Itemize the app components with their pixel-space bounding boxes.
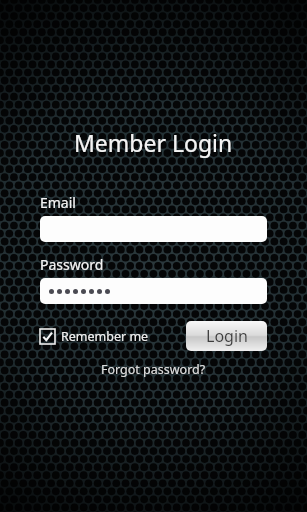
- staticText: Login: [206, 325, 248, 347]
- other: Remember me checkbox: [40, 329, 55, 344]
- button[interactable]: [40, 278, 267, 304]
- button[interactable]: Login: [186, 321, 267, 351]
- staticText: Password: [40, 255, 104, 274]
- button[interactable]: Remember me checkbox: [40, 328, 149, 345]
- staticText: Forgot password?: [101, 361, 206, 378]
- staticText: Member Login: [74, 127, 233, 158]
- button[interactable]: Forgot password?: [101, 361, 206, 378]
- staticText: Email: [40, 193, 76, 212]
- staticText: Remember me: [61, 328, 149, 345]
- button[interactable]: [40, 216, 267, 242]
